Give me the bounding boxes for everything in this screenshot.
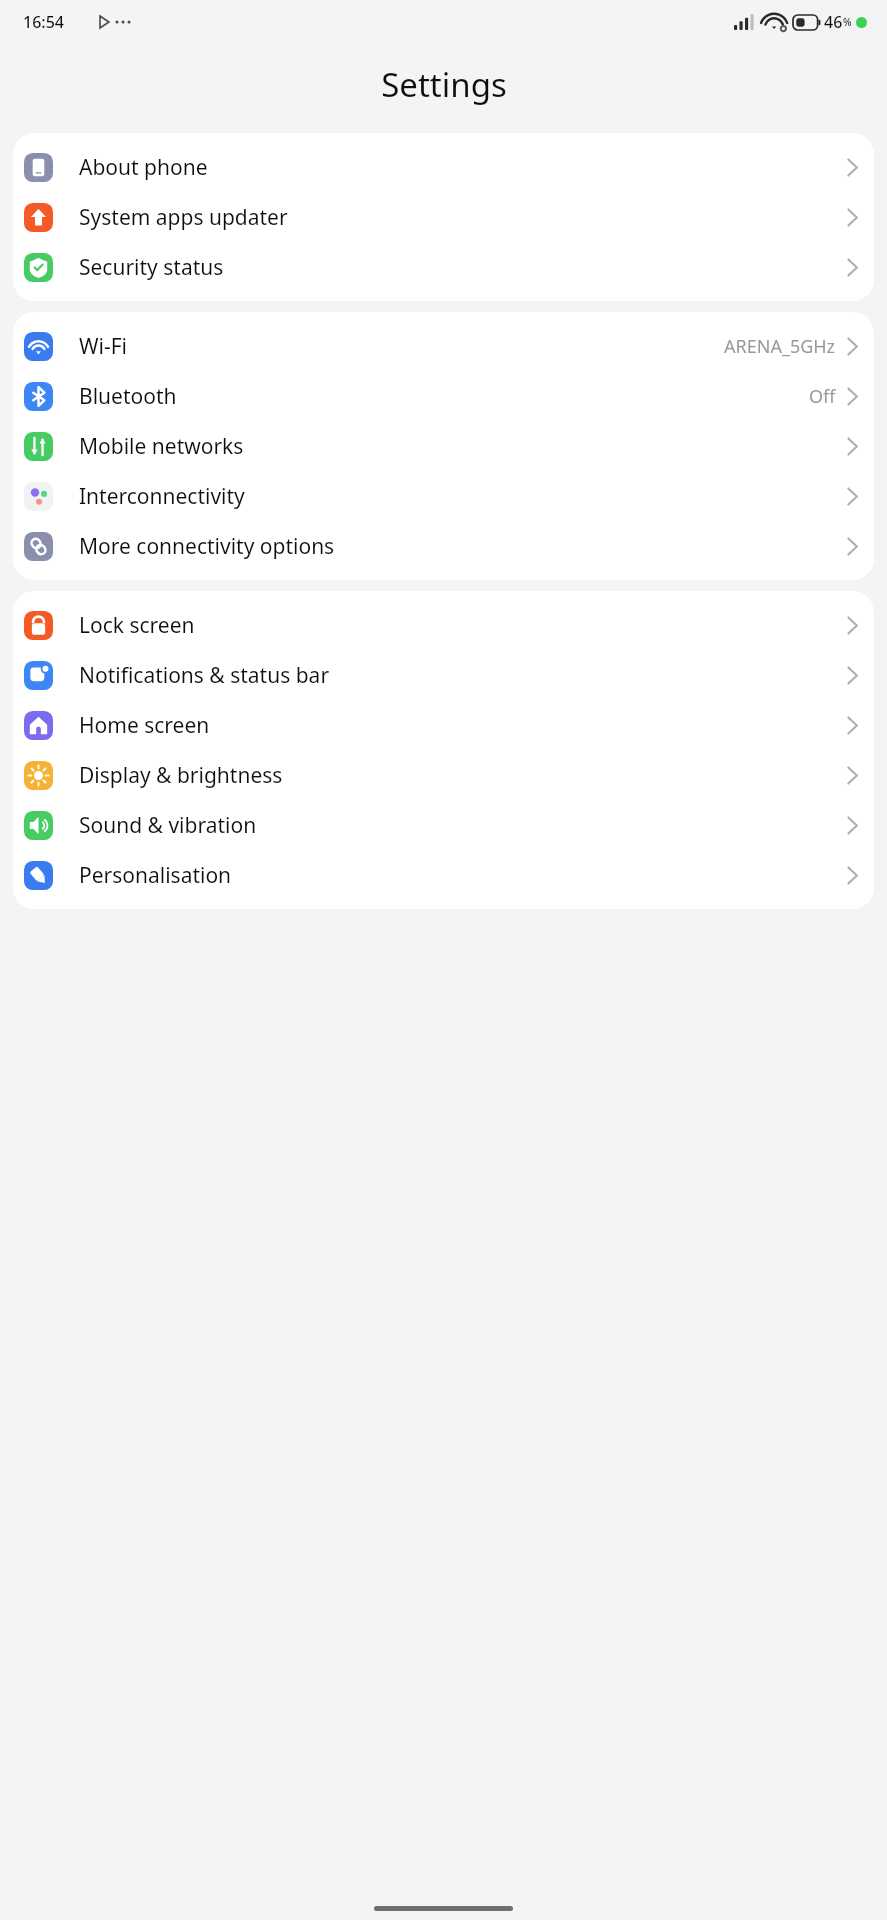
- button[interactable]: Security status: [13, 242, 874, 292]
- button[interactable]: Personalisation: [13, 850, 874, 900]
- button[interactable]: Wi-Fi: [13, 321, 874, 371]
- button[interactable]: Bluetooth: [13, 371, 874, 421]
- staticText: Interconnectivity: [79, 482, 847, 511]
- button[interactable]: Notifications & status bar: [13, 650, 874, 700]
- staticText: 46: [824, 11, 843, 33]
- staticText: ARENA_5GHz: [724, 334, 836, 359]
- staticText: Wi-Fi: [79, 332, 724, 361]
- button[interactable]: Interconnectivity: [13, 471, 874, 521]
- button[interactable]: Home screen: [13, 700, 874, 750]
- staticText: Bluetooth: [79, 382, 809, 411]
- staticText: 16:54: [23, 11, 64, 33]
- staticText: Home screen: [79, 711, 847, 740]
- staticText: System apps updater: [79, 203, 847, 232]
- button[interactable]: System apps updater: [13, 192, 874, 242]
- staticText: Settings: [381, 62, 507, 107]
- staticText: Display & brightness: [79, 761, 847, 790]
- staticText: More connectivity options: [79, 532, 847, 561]
- staticText: Personalisation: [79, 861, 847, 890]
- staticText: Sound & vibration: [79, 811, 847, 840]
- button[interactable]: About phone: [13, 142, 874, 192]
- button[interactable]: More connectivity options: [13, 521, 874, 571]
- button[interactable]: Mobile networks: [13, 421, 874, 471]
- button[interactable]: Display & brightness: [13, 750, 874, 800]
- staticText: About phone: [79, 153, 847, 182]
- staticText: Mobile networks: [79, 432, 847, 461]
- button[interactable]: Lock screen: [13, 600, 874, 650]
- staticText: Lock screen: [79, 611, 847, 640]
- button[interactable]: Sound & vibration: [13, 800, 874, 850]
- staticText: Security status: [79, 253, 847, 282]
- staticText: %: [843, 15, 852, 29]
- staticText: Notifications & status bar: [79, 661, 847, 690]
- staticText: Off: [809, 384, 836, 409]
